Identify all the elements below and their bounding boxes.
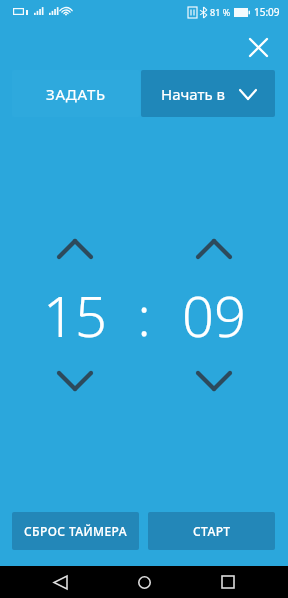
button[interactable]: Обзор [204, 566, 252, 598]
staticText: 15:09 [254, 5, 280, 19]
button[interactable]: Назад [36, 566, 84, 598]
staticText: : [137, 278, 151, 352]
staticText: СБРОС ТАЙМЕРА [24, 523, 127, 539]
staticText: СТАРТ [193, 523, 231, 539]
staticText: Начать в [161, 84, 226, 104]
button[interactable]: СТАРТ [148, 512, 275, 550]
staticText: 09 [182, 277, 246, 353]
button[interactable]: Увеличить часы [47, 231, 103, 267]
button[interactable]: Домой [120, 566, 168, 598]
button[interactable]: Увеличить минуты [186, 231, 242, 267]
button[interactable]: Закрыть [238, 27, 278, 67]
staticText: 15 [43, 277, 107, 353]
button[interactable]: СБРОС ТАЙМЕРА [12, 512, 139, 550]
staticText: ЗАДАТЬ [46, 84, 106, 104]
button[interactable]: Начать в [141, 70, 275, 117]
button[interactable]: Уменьшить минуты [186, 363, 242, 399]
button[interactable]: Уменьшить часы [47, 363, 103, 399]
staticText: 81 % [210, 6, 231, 18]
button[interactable]: ЗАДАТЬ [12, 70, 140, 117]
